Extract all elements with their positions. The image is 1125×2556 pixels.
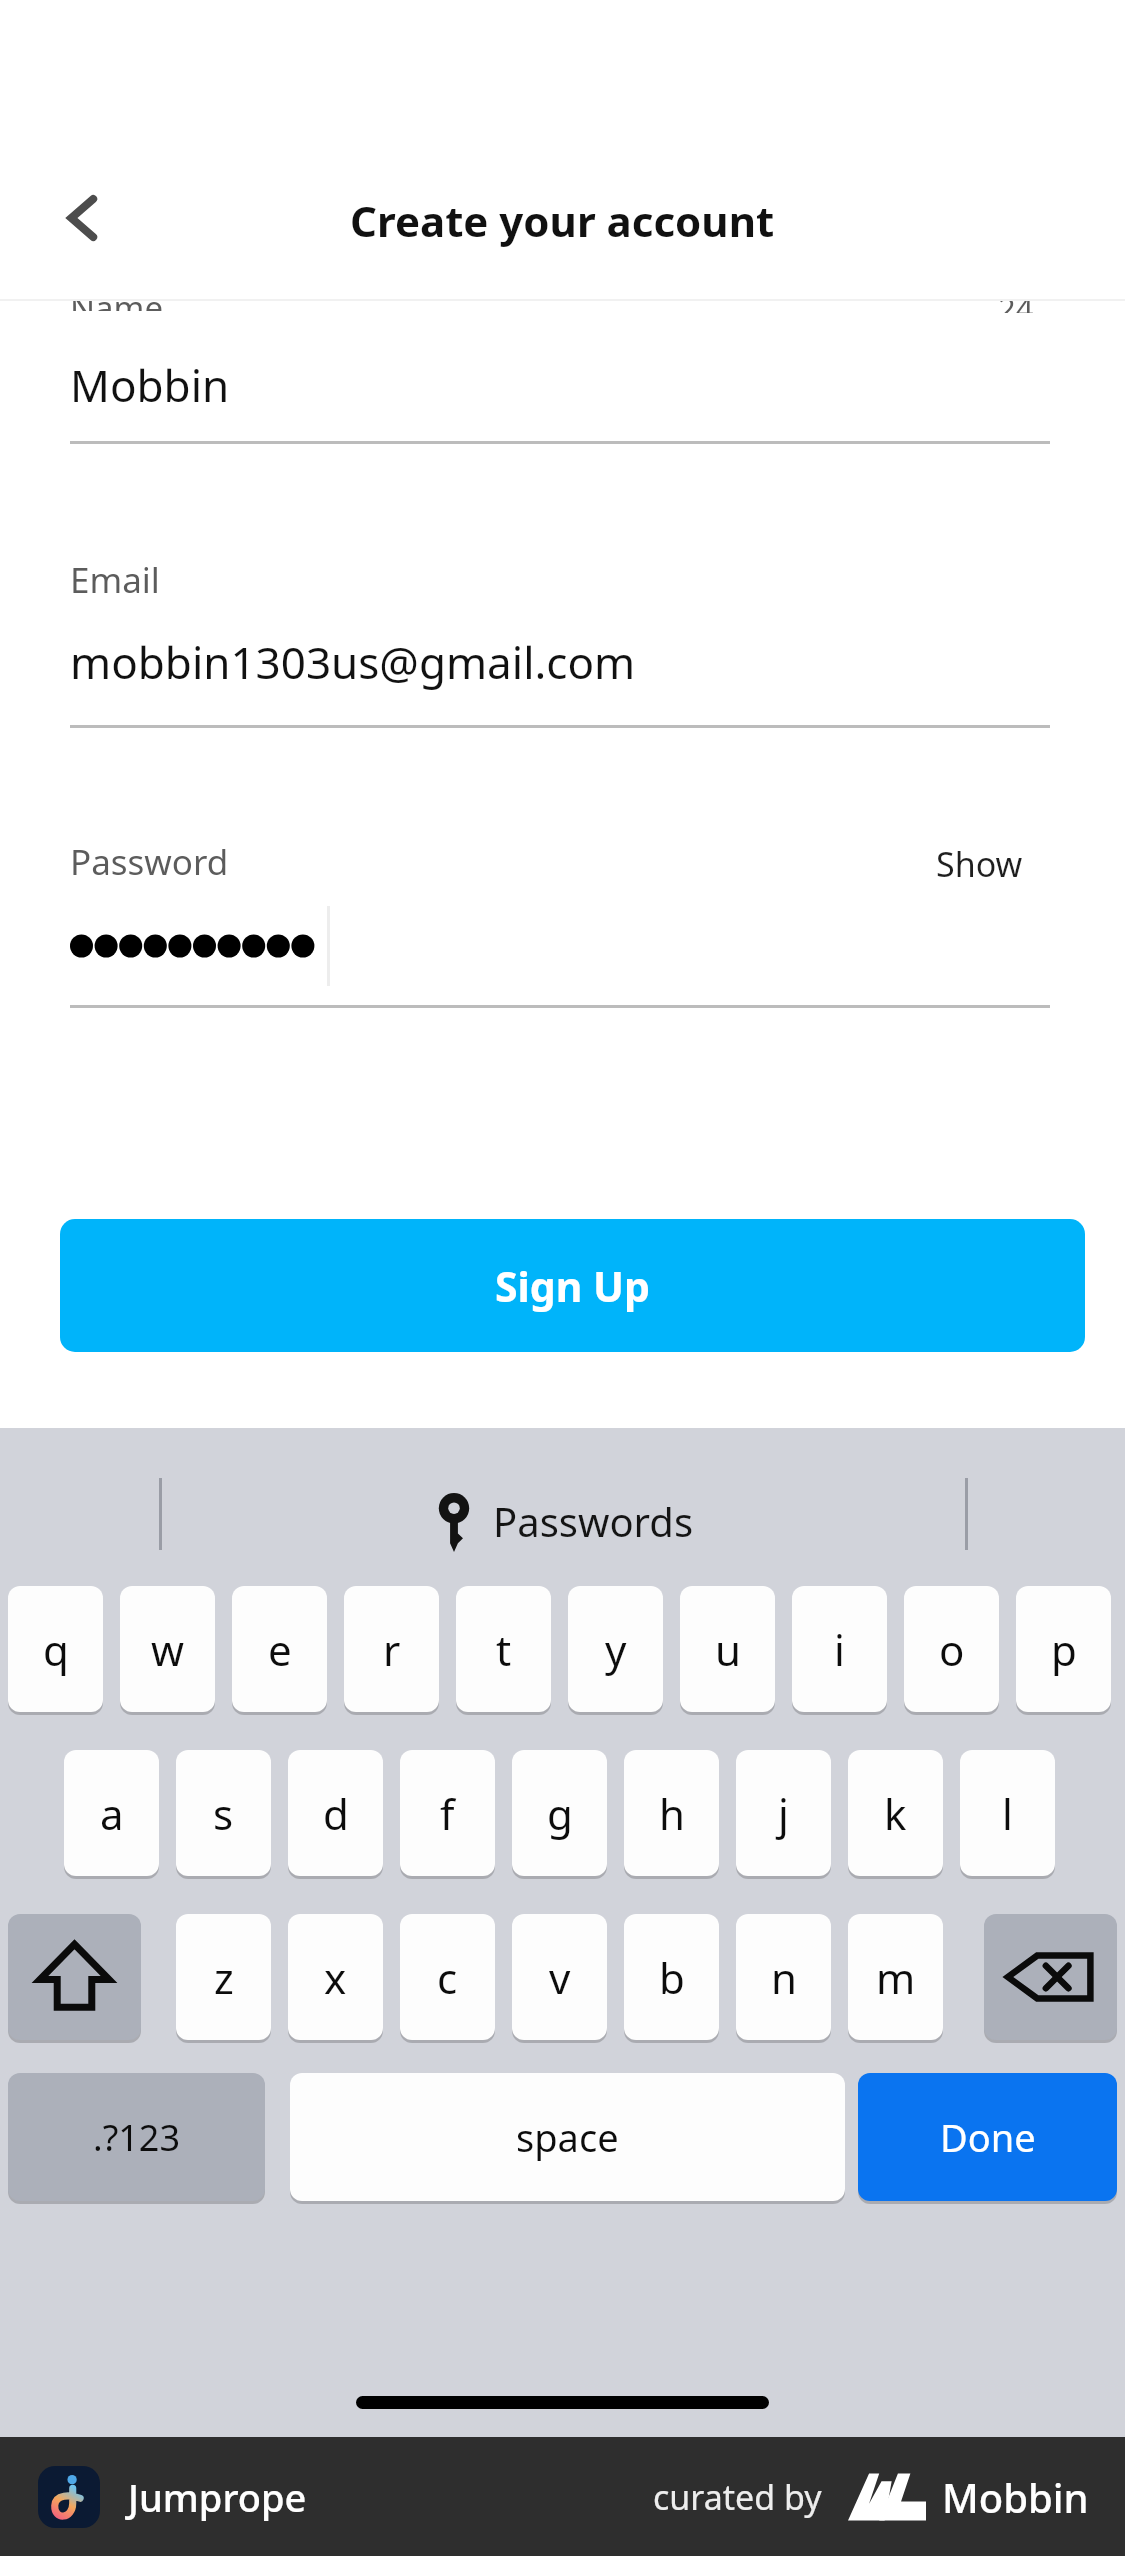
staticText: z <box>214 1949 234 2006</box>
staticText: 24 <box>998 301 1034 313</box>
staticText: p <box>1051 1621 1077 1678</box>
button[interactable]: f <box>400 1750 495 1876</box>
staticText: b <box>659 1949 685 2006</box>
button[interactable]: e <box>232 1586 327 1712</box>
staticText: m <box>876 1949 916 2006</box>
button[interactable]: j <box>736 1750 831 1876</box>
staticText: l <box>1002 1785 1013 1842</box>
staticText: Email <box>70 556 160 604</box>
staticText: v <box>549 1949 571 2006</box>
button[interactable]: t <box>456 1586 551 1712</box>
staticText: q <box>43 1621 69 1678</box>
staticText: y <box>605 1621 627 1678</box>
staticText: Passwords <box>493 1494 694 1548</box>
staticText: Mobbin <box>942 2470 1089 2524</box>
button[interactable]: Sign Up <box>60 1219 1085 1352</box>
staticText: f <box>440 1785 455 1842</box>
staticText: r <box>383 1621 401 1678</box>
button[interactable]: x <box>288 1914 383 2040</box>
button[interactable]: z <box>176 1914 271 2040</box>
button[interactable]: space <box>290 2073 845 2201</box>
staticText: g <box>547 1785 573 1842</box>
staticText: n <box>771 1949 797 2006</box>
button[interactable]: Back <box>36 172 128 264</box>
button[interactable]: q <box>8 1586 103 1712</box>
button[interactable]: o <box>904 1586 999 1712</box>
button[interactable]: a <box>64 1750 159 1876</box>
staticText: Password <box>70 838 229 886</box>
staticText: Show <box>936 841 1023 887</box>
staticText: j <box>778 1785 789 1842</box>
staticText: w <box>151 1621 185 1678</box>
button[interactable]: n <box>736 1914 831 2040</box>
staticText: u <box>715 1621 741 1678</box>
button[interactable]: v <box>512 1914 607 2040</box>
button[interactable]: k <box>848 1750 943 1876</box>
staticText: Mobbin <box>70 355 230 415</box>
button[interactable]: c <box>400 1914 495 2040</box>
staticText: mobbin1303us@gmail.com <box>70 632 636 692</box>
button[interactable]: Backspace <box>984 1914 1117 2040</box>
button[interactable]: g <box>512 1750 607 1876</box>
button[interactable]: y <box>568 1586 663 1712</box>
staticText: Done <box>940 2111 1036 2163</box>
staticText: Sign Up <box>495 1258 650 1314</box>
staticText: h <box>659 1785 685 1842</box>
staticText: curated by <box>653 2474 822 2520</box>
staticText: Name <box>70 301 164 311</box>
button[interactable]: r <box>344 1586 439 1712</box>
staticText: space <box>516 2111 619 2163</box>
button[interactable]: w <box>120 1586 215 1712</box>
button[interactable]: i <box>792 1586 887 1712</box>
staticText: a <box>100 1785 124 1842</box>
button[interactable]: p <box>1016 1586 1111 1712</box>
button[interactable]: .?123 <box>8 2073 265 2201</box>
button[interactable]: u <box>680 1586 775 1712</box>
button[interactable]: Show <box>936 841 1023 887</box>
button[interactable]: Shift <box>8 1914 141 2040</box>
staticText: i <box>834 1621 845 1678</box>
button[interactable]: s <box>176 1750 271 1876</box>
staticText: s <box>213 1785 234 1842</box>
button[interactable]: b <box>624 1914 719 2040</box>
staticText: d <box>323 1785 349 1842</box>
button[interactable]: Done <box>858 2073 1117 2201</box>
button[interactable]: h <box>624 1750 719 1876</box>
staticText: t <box>496 1621 512 1678</box>
button[interactable]: d <box>288 1750 383 1876</box>
staticText: e <box>268 1621 292 1678</box>
staticText: .?123 <box>93 2113 181 2162</box>
staticText: Create your account <box>350 192 775 249</box>
button[interactable]: m <box>848 1914 943 2040</box>
staticText: x <box>324 1949 347 2006</box>
staticText: c <box>437 1949 458 2006</box>
button[interactable]: l <box>960 1750 1055 1876</box>
staticText: k <box>884 1785 907 1842</box>
button[interactable]: Passwords <box>423 1486 702 1556</box>
staticText: Jumprope <box>128 2471 307 2523</box>
staticText: o <box>939 1621 965 1678</box>
